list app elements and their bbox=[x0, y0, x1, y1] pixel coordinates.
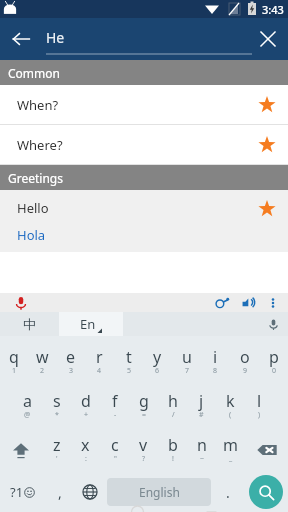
staticText: 中 bbox=[23, 316, 36, 332]
button[interactable]: Theme bbox=[214, 295, 230, 311]
staticText: v bbox=[139, 434, 148, 456]
staticText: r bbox=[96, 346, 103, 368]
staticText: Hello bbox=[17, 199, 49, 217]
staticText: k bbox=[226, 390, 235, 412]
button[interactable]: j bbox=[187, 384, 216, 428]
button[interactable]: When? bbox=[0, 85, 288, 124]
staticText: En bbox=[80, 315, 96, 333]
button[interactable]: f bbox=[100, 384, 129, 428]
staticText: ) bbox=[258, 410, 261, 420]
button[interactable]: o bbox=[230, 340, 259, 384]
staticText: - bbox=[114, 410, 117, 420]
button[interactable]: y bbox=[143, 340, 172, 384]
button[interactable]: p bbox=[259, 340, 288, 384]
button[interactable]: More options bbox=[266, 296, 280, 310]
button[interactable]: Sound bbox=[240, 295, 256, 311]
button[interactable]: h bbox=[158, 384, 187, 428]
staticText: 6 bbox=[155, 366, 160, 376]
button[interactable]: En bbox=[59, 312, 123, 336]
button[interactable]: l bbox=[245, 384, 274, 428]
button[interactable]: Search bbox=[243, 472, 288, 512]
button[interactable]: x bbox=[71, 428, 100, 472]
button[interactable]: Common bbox=[0, 60, 288, 85]
button[interactable]: Change language bbox=[75, 472, 105, 512]
button[interactable]: d bbox=[71, 384, 100, 428]
staticText: ' bbox=[56, 454, 58, 464]
staticText: t bbox=[126, 346, 132, 368]
button[interactable]: t bbox=[114, 340, 143, 384]
staticText: English bbox=[139, 484, 180, 500]
button[interactable]: w bbox=[28, 340, 56, 384]
button[interactable]: s bbox=[42, 384, 71, 428]
staticText: ~ bbox=[200, 454, 205, 464]
staticText: " bbox=[114, 454, 117, 464]
button[interactable]: Greetings bbox=[0, 165, 288, 190]
staticText: / bbox=[172, 410, 175, 420]
button[interactable]: u bbox=[172, 340, 201, 384]
staticText: e bbox=[66, 346, 76, 368]
staticText: s bbox=[53, 390, 61, 412]
staticText: o bbox=[240, 346, 250, 368]
staticText: w bbox=[36, 346, 49, 368]
button[interactable]: a bbox=[13, 384, 42, 428]
button[interactable]: q bbox=[0, 340, 28, 384]
button[interactable]: Where? bbox=[0, 125, 288, 164]
staticText: 9 bbox=[243, 366, 248, 376]
staticText: ? bbox=[142, 454, 146, 464]
button[interactable]: Hello bbox=[0, 190, 288, 252]
button[interactable]: Shift bbox=[0, 428, 42, 472]
staticText: _ bbox=[229, 454, 233, 464]
staticText: , bbox=[58, 483, 62, 502]
button[interactable]: English bbox=[107, 478, 211, 506]
button[interactable]: i bbox=[201, 340, 230, 384]
staticText: ?1 bbox=[10, 483, 24, 501]
button[interactable]: Back bbox=[0, 18, 42, 60]
staticText: x bbox=[81, 434, 90, 456]
button[interactable]: ?1 bbox=[0, 472, 45, 512]
button[interactable]: e bbox=[56, 340, 85, 384]
staticText: u bbox=[182, 346, 192, 368]
button[interactable]: z bbox=[42, 428, 71, 472]
button[interactable]: Clear bbox=[248, 19, 288, 59]
staticText: ! bbox=[172, 454, 174, 464]
button[interactable]: v bbox=[129, 428, 158, 472]
staticText: y bbox=[153, 346, 162, 368]
staticText: 0 bbox=[272, 366, 277, 376]
button[interactable]: Voice input bbox=[13, 295, 29, 311]
staticText: . bbox=[226, 483, 230, 502]
button[interactable]: k bbox=[216, 384, 245, 428]
staticText: a bbox=[23, 390, 32, 412]
staticText: d bbox=[81, 390, 91, 412]
staticText: 8 bbox=[213, 366, 218, 376]
staticText: h bbox=[168, 390, 178, 412]
staticText: n bbox=[197, 434, 207, 456]
staticText: q bbox=[9, 346, 19, 368]
staticText: 2 bbox=[40, 366, 45, 376]
staticText: # bbox=[199, 410, 204, 420]
other: Microphone bbox=[267, 318, 280, 331]
button[interactable]: He bbox=[46, 23, 252, 55]
staticText: 5 bbox=[127, 366, 132, 376]
button[interactable]: r bbox=[85, 340, 114, 384]
staticText: : bbox=[85, 454, 87, 464]
button[interactable]: , bbox=[45, 472, 75, 512]
staticText: l bbox=[257, 390, 262, 412]
button[interactable]: m bbox=[216, 428, 245, 472]
button[interactable]: . bbox=[213, 472, 243, 512]
button[interactable]: Backspace bbox=[245, 428, 288, 472]
button[interactable]: n bbox=[187, 428, 216, 472]
staticText: Where? bbox=[17, 136, 63, 154]
button[interactable]: c bbox=[100, 428, 129, 472]
staticText: 1 bbox=[12, 366, 17, 376]
staticText: b bbox=[168, 434, 178, 456]
staticText: m bbox=[223, 434, 238, 456]
staticText: c bbox=[111, 434, 119, 456]
button[interactable]: b bbox=[158, 428, 187, 472]
staticText: * bbox=[55, 410, 59, 420]
staticText: He bbox=[46, 28, 65, 47]
button[interactable]: Microphone bbox=[123, 312, 288, 336]
button[interactable]: 中 bbox=[0, 312, 59, 336]
button[interactable]: g bbox=[129, 384, 158, 428]
staticText: Hola bbox=[17, 226, 46, 244]
staticText: f bbox=[112, 390, 118, 412]
